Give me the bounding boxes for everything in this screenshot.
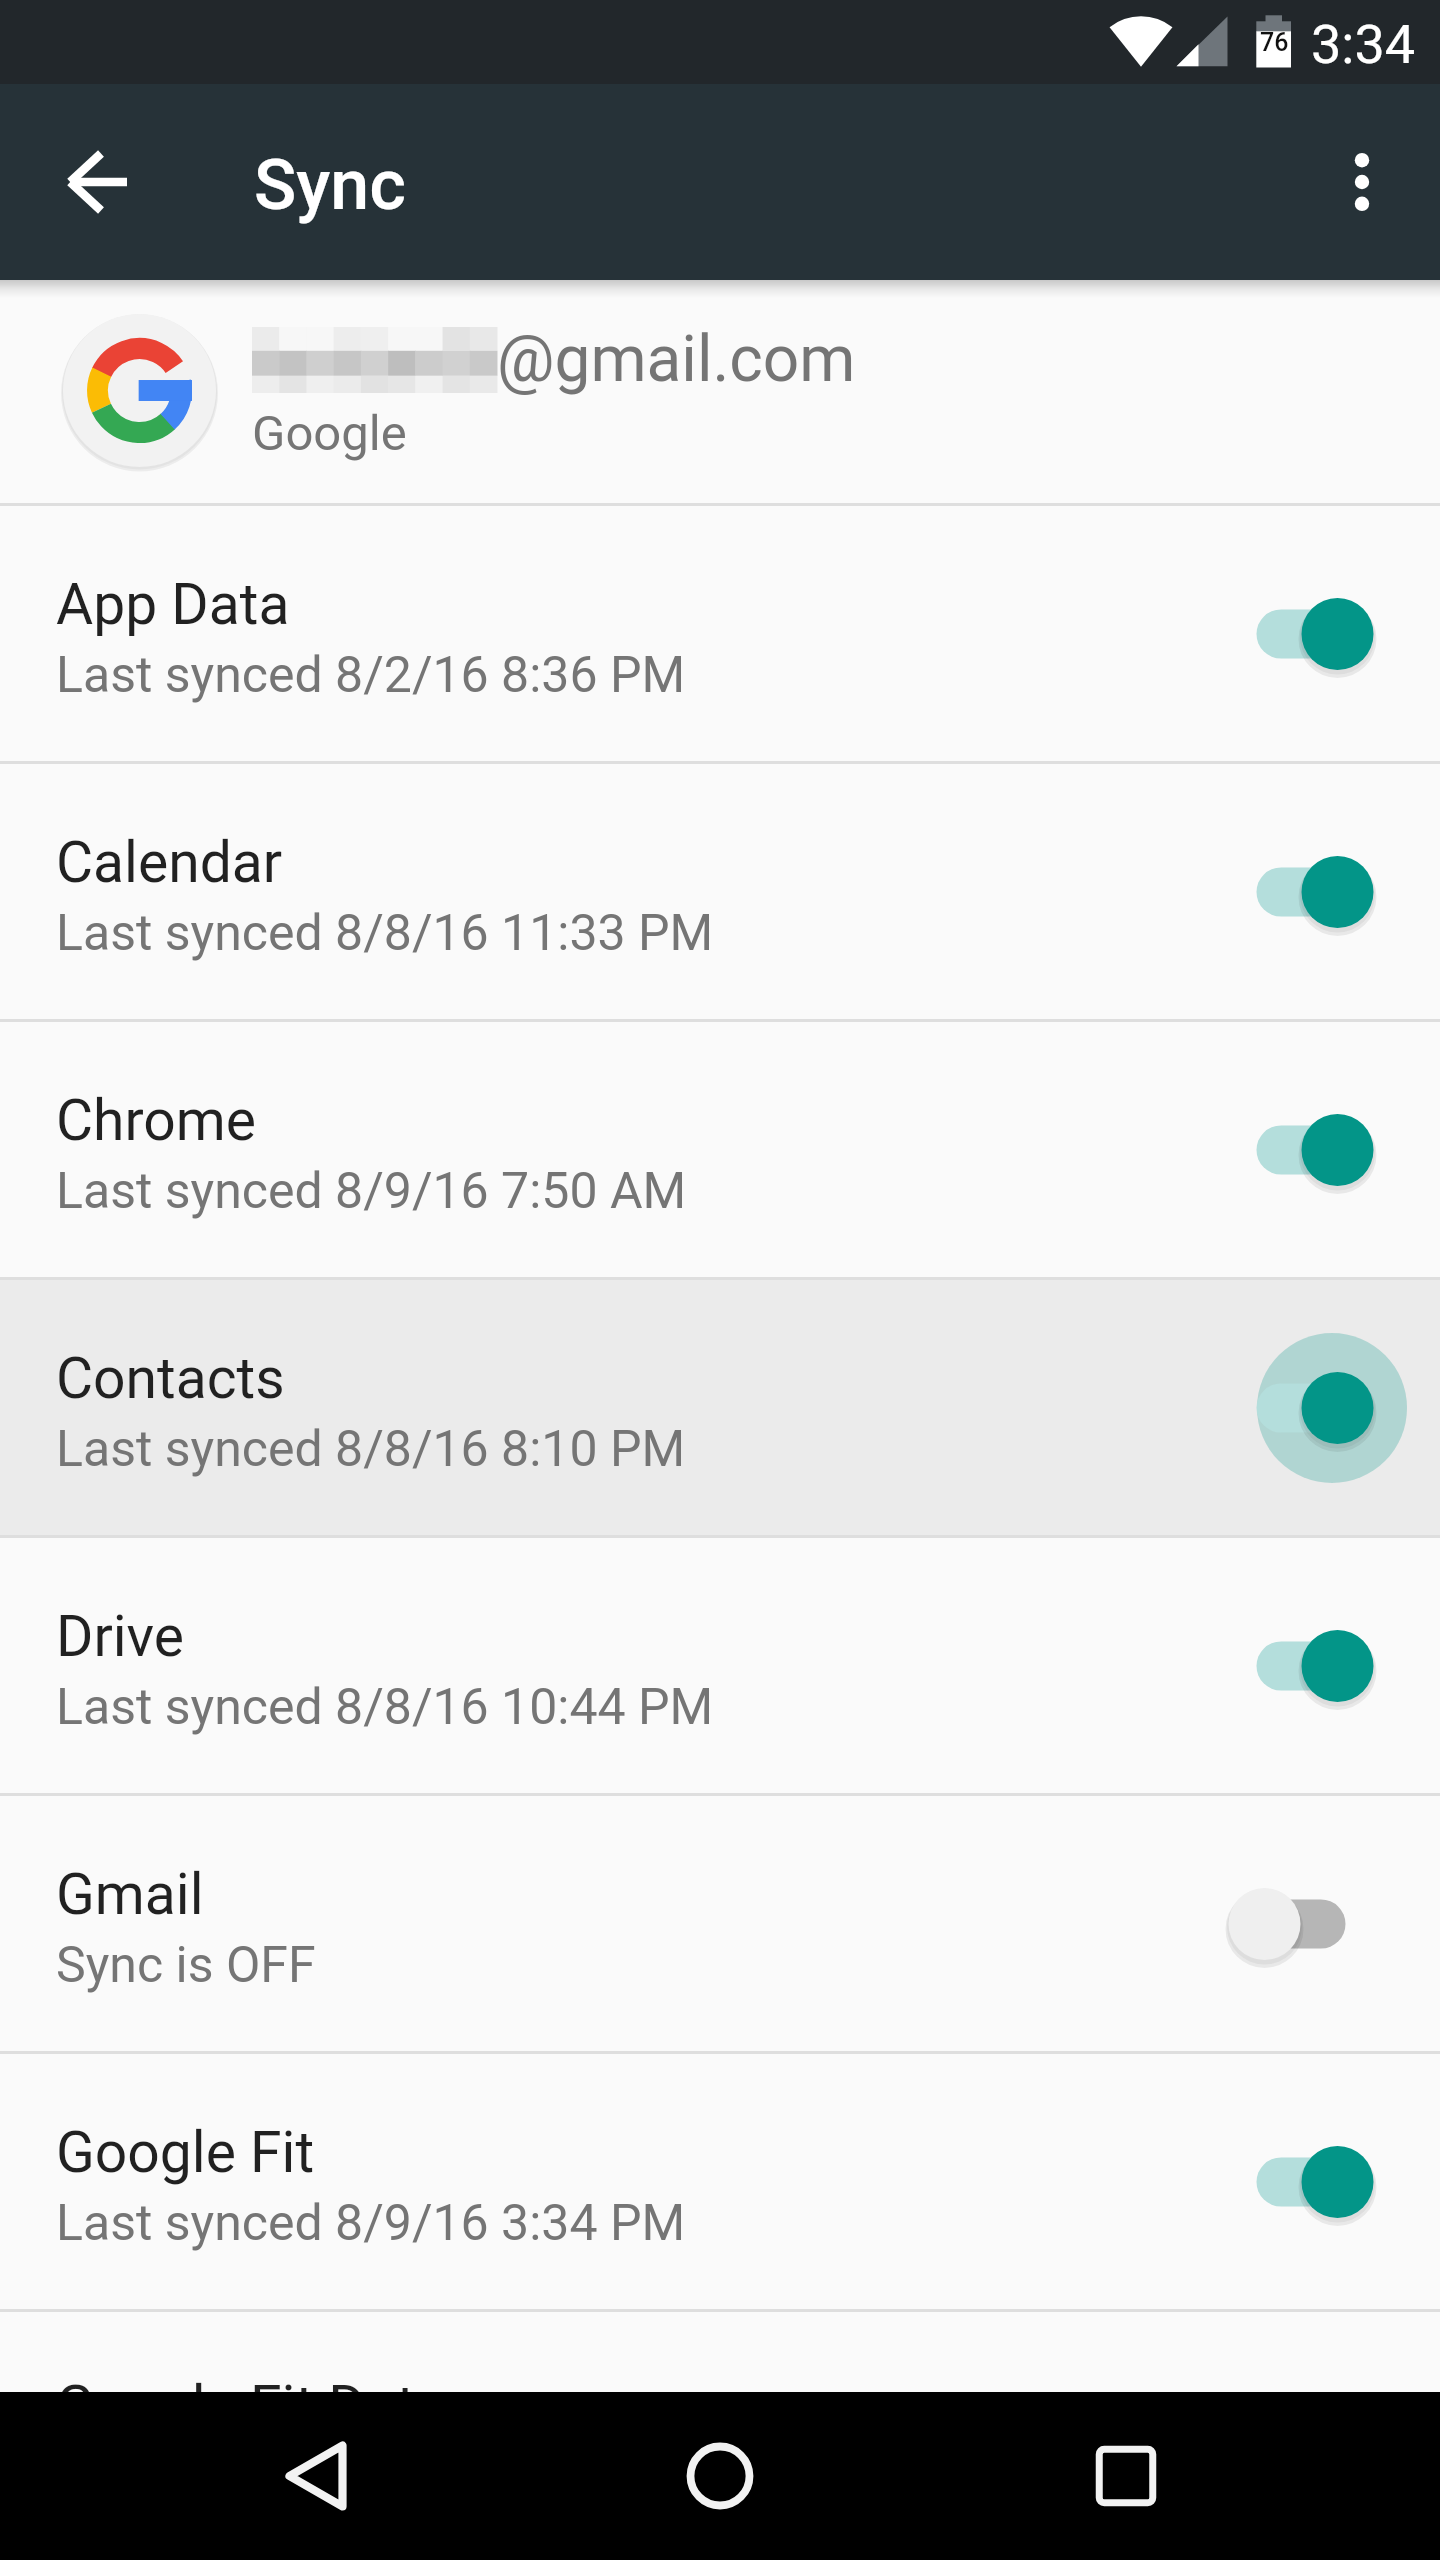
staticText: Google Fit Data [56, 2373, 447, 2440]
staticText: Contacts [56, 1345, 285, 1412]
button[interactable]: More options [1292, 112, 1432, 252]
button[interactable]: Calendar [0, 764, 1440, 1019]
button[interactable]: Drive sync switch [1210, 1566, 1430, 1766]
staticText: Last synced 8/9/16 7:50 AM [56, 1162, 687, 1221]
staticText: Sync is OFF [56, 1936, 316, 1995]
staticText: Last synced 8/8/16 11:33 PM [56, 904, 714, 963]
staticText: Last synced 8/9/16 1:02 PM [56, 2448, 686, 2507]
button[interactable]: Gmail [0, 1796, 1440, 2051]
staticText: Google [252, 405, 407, 462]
staticText: Gmail [56, 1861, 204, 1928]
button[interactable]: Google Fit sync switch [1210, 2082, 1430, 2282]
button[interactable]: Drive [0, 1538, 1440, 1793]
staticText: Drive [56, 1603, 185, 1670]
staticText: 3:34 [1311, 13, 1416, 76]
staticText: Chrome [56, 1087, 256, 1154]
button[interactable]: Contacts [0, 1280, 1440, 1535]
staticText: Google Fit [56, 2119, 315, 2186]
button[interactable]: Back [220, 2392, 412, 2560]
button[interactable]: Google Fit [0, 2054, 1440, 2309]
button[interactable]: Navigate up [28, 112, 168, 252]
staticText: Last synced 8/9/16 3:34 PM [56, 2194, 686, 2253]
staticText: Sync [254, 144, 406, 226]
button[interactable]: App Data [0, 506, 1440, 761]
button[interactable]: Google Fit Data sync switch [1210, 2336, 1430, 2536]
staticText: Last synced 8/2/16 8:36 PM [56, 646, 686, 705]
staticText: Last synced 8/8/16 8:10 PM [56, 1420, 686, 1479]
staticText: Calendar [56, 829, 283, 896]
button[interactable]: Google Fit Data [0, 2312, 1440, 2560]
staticText: App Data [56, 571, 290, 638]
staticText: Last synced 8/8/16 10:44 PM [56, 1678, 714, 1737]
button[interactable]: Recent apps [1030, 2392, 1222, 2560]
button[interactable]: @gmail.com [0, 280, 1440, 503]
button[interactable]: Gmail sync switch [1210, 1824, 1430, 2024]
staticText: 76 [1260, 28, 1289, 57]
button[interactable]: Home [624, 2392, 816, 2560]
button[interactable]: App Data sync switch [1210, 534, 1430, 734]
button[interactable]: Calendar sync switch [1210, 792, 1430, 992]
button[interactable]: Chrome sync switch [1210, 1050, 1430, 1250]
button[interactable]: Contacts sync switch [1210, 1308, 1430, 1508]
button[interactable]: Chrome [0, 1022, 1440, 1277]
staticText: @gmail.com [497, 322, 856, 397]
